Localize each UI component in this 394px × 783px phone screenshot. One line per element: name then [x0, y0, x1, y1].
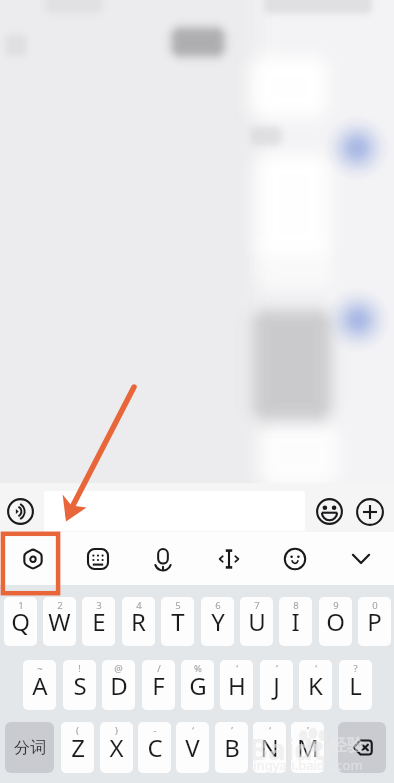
- staticText: Z: [71, 731, 85, 764]
- staticText: F: [152, 669, 165, 702]
- staticText: S: [73, 669, 87, 702]
- staticText: !: [78, 662, 81, 675]
- staticText: 0: [372, 599, 378, 612]
- staticText: %: [194, 662, 202, 675]
- staticText: ‘: [269, 724, 271, 737]
- button[interactable]: 0: [358, 597, 391, 646]
- staticText: ’: [307, 724, 309, 737]
- button[interactable]: Stickers: [262, 532, 328, 585]
- staticText: 7: [254, 599, 260, 612]
- button[interactable]: ‘: [253, 722, 286, 773]
- staticText: E: [92, 605, 106, 638]
- staticText: ’: [276, 662, 278, 675]
- staticText: ’: [231, 724, 233, 737]
- staticText: J: [273, 669, 280, 702]
- button[interactable]: Voice input: [130, 532, 196, 585]
- staticText: 分词: [14, 738, 46, 758]
- staticText: K: [308, 669, 323, 702]
- staticText: H: [228, 669, 246, 702]
- button[interactable]: ‘: [176, 722, 209, 773]
- staticText: @: [114, 662, 123, 675]
- button[interactable]: 8: [279, 597, 312, 646]
- staticText: T: [171, 605, 185, 638]
- staticText: 5: [175, 599, 181, 612]
- button[interactable]: ’: [291, 722, 324, 773]
- button[interactable]: -: [138, 722, 171, 773]
- staticText: ?: [353, 662, 358, 675]
- button[interactable]: Emoji: [313, 495, 346, 528]
- button[interactable]: Hide keyboard: [328, 532, 394, 585]
- staticText: M: [297, 731, 319, 764]
- staticText: D: [110, 669, 128, 702]
- staticText: 经验: [330, 735, 364, 756]
- button[interactable]: 4: [122, 597, 155, 646]
- button[interactable]: [44, 491, 305, 531]
- staticText: I: [291, 605, 300, 638]
- button[interactable]: ?: [339, 660, 372, 710]
- button[interactable]: 2: [43, 597, 76, 646]
- button[interactable]: 6: [201, 597, 234, 646]
- staticText: Baidu: [249, 729, 332, 768]
- staticText: 1: [18, 599, 24, 612]
- button[interactable]: 1: [4, 597, 37, 646]
- staticText: 2: [57, 599, 63, 612]
- staticText: Q: [11, 605, 30, 638]
- staticText: 3: [96, 599, 102, 612]
- button[interactable]: 5: [161, 597, 194, 646]
- button[interactable]: Edit text: [196, 532, 262, 585]
- staticText: X: [109, 731, 124, 764]
- staticText: /: [157, 662, 161, 675]
- staticText: (: [76, 724, 79, 737]
- button[interactable]: Settings: [0, 532, 65, 585]
- staticText: ~: [37, 662, 43, 675]
- button[interactable]: ): [100, 722, 133, 773]
- staticText: B: [224, 731, 240, 764]
- button[interactable]: /: [142, 660, 175, 710]
- staticText: O: [326, 605, 345, 638]
- button[interactable]: Delete: [338, 722, 386, 773]
- staticText: Y: [211, 605, 225, 638]
- button[interactable]: ‘: [220, 660, 253, 710]
- button[interactable]: @: [102, 660, 135, 710]
- button[interactable]: Voice input: [4, 495, 37, 528]
- button[interactable]: 9: [319, 597, 352, 646]
- staticText: ‘: [192, 724, 194, 737]
- button[interactable]: Keyboard layout: [65, 532, 130, 585]
- staticText: -: [153, 724, 157, 737]
- staticText: R: [131, 605, 146, 638]
- staticText: ‘: [236, 662, 238, 675]
- staticText: N: [260, 731, 279, 764]
- button[interactable]: ’: [215, 722, 248, 773]
- staticText: ‘: [315, 662, 317, 675]
- staticText: G: [189, 669, 207, 702]
- staticText: L: [349, 669, 362, 702]
- staticText: P: [367, 605, 382, 638]
- staticText: C: [147, 731, 163, 764]
- staticText: A: [32, 669, 48, 702]
- staticText: V: [185, 731, 200, 764]
- staticText: jingyan.baidu.com: [250, 756, 363, 774]
- button[interactable]: !: [63, 660, 96, 710]
- button[interactable]: %: [181, 660, 214, 710]
- staticText: W: [48, 605, 71, 638]
- button[interactable]: ’: [260, 660, 293, 710]
- button[interactable]: (: [61, 722, 94, 773]
- staticText: 9: [333, 599, 339, 612]
- staticText: 4: [136, 599, 142, 612]
- button[interactable]: ~: [23, 660, 56, 710]
- button[interactable]: ‘: [299, 660, 332, 710]
- staticText: ): [115, 724, 118, 737]
- button[interactable]: More: [353, 495, 386, 528]
- button[interactable]: 7: [240, 597, 273, 646]
- button[interactable]: 分词: [5, 722, 54, 773]
- button[interactable]: 3: [82, 597, 115, 646]
- staticText: 8: [293, 599, 299, 612]
- staticText: 6: [215, 599, 221, 612]
- staticText: U: [248, 605, 266, 638]
